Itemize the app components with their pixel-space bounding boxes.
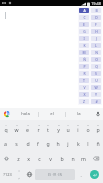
staticText: M [82, 50, 86, 55]
button[interactable]: n [67, 151, 78, 166]
staticText: d [26, 140, 30, 147]
button[interactable]: c [34, 151, 45, 166]
staticText: 8 [77, 123, 79, 126]
button[interactable]: K [79, 43, 89, 48]
staticText: b [60, 155, 64, 162]
staticText: V [83, 85, 86, 90]
staticText: 5 [47, 123, 49, 126]
button[interactable]: l [83, 136, 93, 151]
button[interactable]: 4 [33, 120, 43, 136]
button[interactable]: ñ [93, 136, 103, 151]
button[interactable]: J [91, 36, 101, 41]
staticText: U [95, 78, 98, 83]
button[interactable]: Q [91, 64, 101, 69]
button[interactable]: V [79, 85, 89, 90]
button[interactable]: X [79, 92, 89, 97]
button[interactable]: hola [13, 108, 38, 120]
button[interactable]: Enter [86, 166, 103, 183]
button[interactable]: Y [91, 92, 101, 97]
button[interactable]: 1 [0, 120, 11, 136]
button[interactable]: 9 [83, 120, 93, 136]
button[interactable]: el [39, 108, 65, 120]
staticText: C [83, 15, 86, 20]
staticText: 19:48 [91, 1, 101, 6]
staticText: J [96, 36, 97, 41]
button[interactable]: s [11, 136, 22, 151]
button[interactable]: G [79, 29, 89, 34]
staticText: R [83, 71, 86, 76]
button[interactable]: P [79, 64, 89, 69]
staticText: 1 [5, 123, 7, 126]
button[interactable]: 2 [11, 120, 22, 136]
button[interactable]: H [91, 29, 101, 34]
button[interactable]: a [0, 136, 11, 151]
button[interactable]: Ñ [79, 57, 89, 62]
staticText: 4 [38, 123, 40, 126]
staticText: Z [83, 99, 85, 104]
button[interactable]: M [79, 50, 89, 55]
staticText: K [83, 43, 86, 48]
button[interactable]: z [13, 151, 23, 166]
button[interactable]: B [91, 8, 101, 13]
staticText: la [77, 111, 81, 117]
button[interactable]: F [91, 22, 101, 27]
staticText: l [87, 140, 89, 147]
button[interactable]: N [91, 50, 101, 55]
staticText: h [56, 140, 60, 147]
button[interactable]: Shift [0, 151, 13, 166]
button[interactable]: A [79, 8, 89, 13]
staticText: x [27, 155, 30, 162]
button[interactable]: b [56, 151, 67, 166]
button[interactable]: 0 [93, 120, 103, 136]
staticText: el [50, 111, 54, 117]
button[interactable]: Backspace [89, 151, 103, 166]
button[interactable]: L [91, 43, 101, 48]
staticText: , [18, 174, 20, 180]
button[interactable]: 6 [53, 120, 63, 136]
button[interactable]: la [66, 108, 92, 120]
button[interactable]: Change language [24, 166, 34, 183]
button[interactable]: h [53, 136, 63, 151]
staticText: D [95, 15, 98, 20]
button[interactable]: W [91, 85, 101, 90]
button[interactable]: C [79, 15, 89, 20]
staticText: G [83, 29, 86, 34]
staticText: o [86, 126, 90, 133]
button[interactable]: g [43, 136, 53, 151]
button[interactable]: ° [14, 166, 24, 183]
button[interactable]: 3 [22, 120, 33, 136]
button[interactable]: f [33, 136, 43, 151]
button[interactable]: 8 [73, 120, 83, 136]
button[interactable]: k [73, 136, 83, 151]
button[interactable]: U [91, 78, 101, 83]
button[interactable]: x [23, 151, 34, 166]
button[interactable]: Z [79, 99, 89, 104]
button[interactable]: 7 [63, 120, 73, 136]
staticText: Ñ [83, 57, 86, 62]
button[interactable]: Voice input [92, 108, 103, 120]
staticText: H [95, 29, 98, 34]
staticText: v [49, 155, 52, 162]
button[interactable]: j [63, 136, 73, 151]
button[interactable]: T [79, 78, 89, 83]
button[interactable]: O [91, 57, 101, 62]
staticText: F [95, 22, 97, 27]
button[interactable]: S [91, 71, 101, 76]
button[interactable]: Google search [0, 108, 13, 120]
staticText: ES · FR · EN [48, 173, 62, 177]
button[interactable]: R [79, 71, 89, 76]
staticText: W [94, 85, 98, 90]
button[interactable]: ?123 [0, 166, 14, 183]
button[interactable]: d [22, 136, 33, 151]
button[interactable]: E [79, 22, 89, 27]
button[interactable]: v [45, 151, 56, 166]
staticText: f [37, 140, 39, 147]
button[interactable]: ES · FR · EN [35, 169, 75, 180]
button[interactable]: 5 [43, 120, 53, 136]
button[interactable]: # [91, 99, 101, 104]
button[interactable]: m [78, 151, 89, 166]
staticText: 3 [27, 123, 29, 126]
button[interactable]: I [79, 36, 89, 41]
button[interactable]: D [91, 15, 101, 20]
